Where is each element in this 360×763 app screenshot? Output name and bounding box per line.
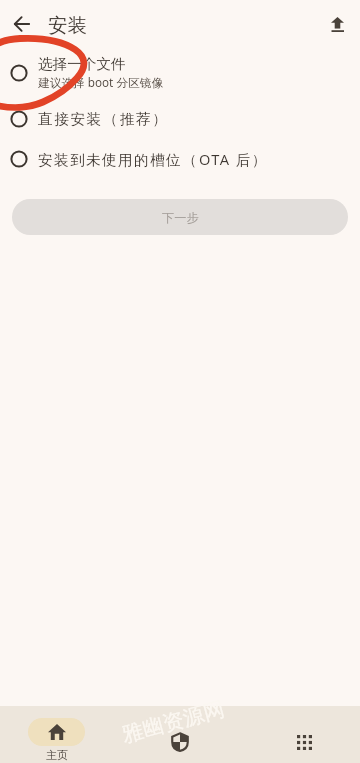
- button[interactable]: 返回: [5, 7, 39, 41]
- staticText: 主页: [46, 748, 68, 762]
- staticText: 建议选择 boot 分区镜像: [38, 74, 164, 90]
- button[interactable]: 上传: [321, 8, 353, 40]
- button[interactable]: 安装到未使用的槽位（OTA 后）: [0, 139, 360, 179]
- staticText: 选择一个文件: [38, 55, 126, 73]
- staticText: 下一步: [162, 210, 199, 225]
- staticText: 直接安装（推荐）: [38, 110, 170, 128]
- button[interactable]: 应用: [280, 725, 328, 759]
- staticText: 雅幽资源网: [119, 696, 227, 748]
- button[interactable]: 选择一个文件: [0, 52, 360, 93]
- button[interactable]: 主页: [28, 718, 85, 762]
- button[interactable]: 直接安装（推荐）: [0, 99, 360, 139]
- button[interactable]: 安全: [156, 724, 204, 760]
- button[interactable]: 下一步: [12, 199, 348, 235]
- staticText: 安装到未使用的槽位（OTA 后）: [38, 149, 269, 169]
- staticText: 安装: [48, 13, 87, 38]
